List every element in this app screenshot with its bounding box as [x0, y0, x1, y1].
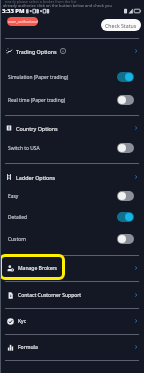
- button[interactable]: Easy: [0, 188, 144, 204]
- other: Open: [133, 318, 139, 324]
- button[interactable]: Contact Customer Support: [0, 284, 144, 306]
- button[interactable]: Ladder Options: [0, 169, 144, 185]
- staticText: Check Status: [105, 22, 137, 29]
- staticText: Simulation (Paper trading): [8, 74, 69, 81]
- other: Open: [133, 174, 139, 180]
- button[interactable]: Check Status: [101, 19, 141, 31]
- staticText: Formula: [18, 344, 38, 351]
- button[interactable]: user_authorized: [7, 17, 38, 26]
- button[interactable]: Country Options: [0, 120, 144, 136]
- other: Open: [133, 125, 139, 131]
- button[interactable]: Custom: [0, 231, 144, 247]
- staticText: Manage Brokers: [18, 265, 57, 272]
- staticText: Real time (Paper trading): [8, 97, 66, 104]
- button[interactable]: Manage Brokers: [0, 257, 144, 279]
- staticText: Trading Options: [16, 48, 57, 55]
- staticText: 3:33 PM: [2, 7, 25, 15]
- button[interactable]: Switch to USA: [0, 140, 144, 156]
- staticText: Custom: [8, 236, 26, 243]
- button[interactable]: Formula: [0, 336, 144, 358]
- button[interactable]: Off: [117, 234, 134, 244]
- other: Open: [133, 292, 139, 298]
- other: Info: [60, 48, 66, 54]
- button[interactable]: Detailed: [0, 209, 144, 225]
- staticText: Contact Customer Support: [18, 292, 82, 299]
- button[interactable]: Real time (Paper trading): [0, 92, 144, 108]
- button[interactable]: Off: [117, 143, 134, 153]
- button[interactable]: Kyc: [0, 310, 144, 332]
- staticText: user_authorized: [8, 19, 38, 24]
- button[interactable]: On: [117, 212, 134, 222]
- button[interactable]: Off: [117, 191, 134, 201]
- button[interactable]: On: [117, 72, 134, 82]
- other: Open: [133, 344, 139, 350]
- staticText: Kyc: [18, 318, 27, 325]
- staticText: Country Options: [16, 125, 58, 132]
- button[interactable]: Trading Options: [0, 43, 144, 59]
- staticText: Detailed: [8, 214, 28, 221]
- button[interactable]: Off: [117, 95, 134, 105]
- staticText: nearly please select a broker from the l…: [5, 0, 77, 4]
- staticText: Ladder Options: [16, 174, 56, 181]
- other: Open: [133, 48, 139, 54]
- button[interactable]: Simulation (Paper trading): [0, 69, 144, 85]
- staticText: Easy: [8, 193, 19, 200]
- staticText: already authorize click on the button be…: [3, 3, 112, 8]
- other: Open: [133, 265, 139, 271]
- staticText: Switch to USA: [8, 145, 40, 152]
